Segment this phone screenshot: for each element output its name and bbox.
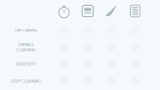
button[interactable]: Coverage xyxy=(76,0,100,21)
staticText: OVERALL xyxy=(18,42,34,47)
staticText: DEEP CLEANING xyxy=(11,78,41,84)
button[interactable]: Time xyxy=(52,0,76,21)
button[interactable]: Report xyxy=(123,0,147,21)
staticText: FIBER SOFT xyxy=(16,61,36,67)
button[interactable]: Brush xyxy=(100,0,123,21)
staticText: TIME SAVING xyxy=(15,27,38,33)
staticText: CLEANING xyxy=(16,47,36,52)
